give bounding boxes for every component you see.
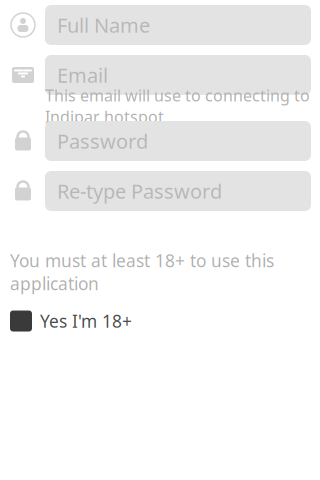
staticText: Re-type Password: [57, 178, 222, 204]
staticText: Full Name: [57, 12, 150, 38]
staticText: This email will use to connecting to Ind…: [45, 85, 310, 127]
button[interactable]: Re-type Password: [45, 171, 311, 211]
button[interactable]: Password: [45, 121, 311, 161]
staticText: Email: [57, 62, 108, 88]
staticText: Password: [57, 128, 148, 154]
staticText: Yes I'm 18+: [40, 309, 132, 332]
button[interactable]: Yes I'm 18+: [0, 307, 320, 335]
button[interactable]: Full Name: [45, 5, 311, 45]
button[interactable]: Email: [45, 55, 311, 95]
staticText: You must at least 18+ to use this applic…: [10, 249, 274, 295]
